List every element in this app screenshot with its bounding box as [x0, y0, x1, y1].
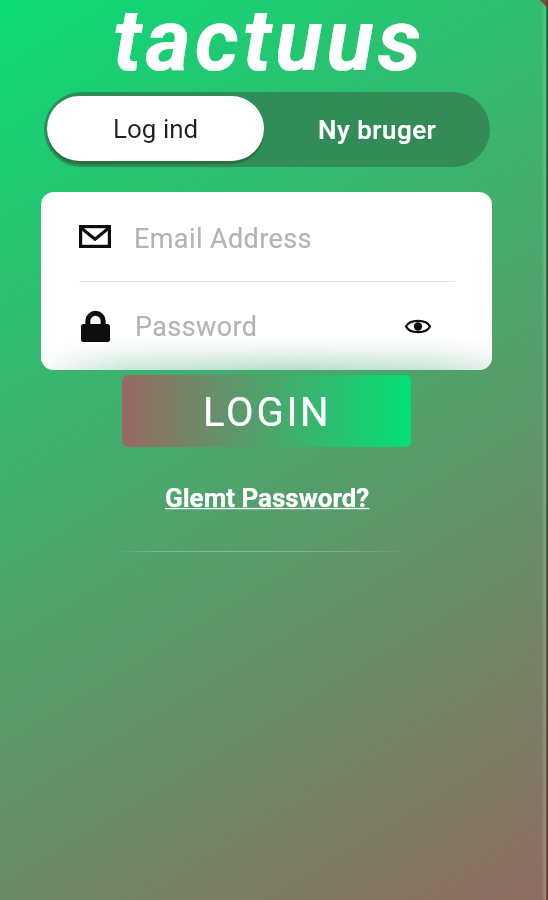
staticText: LOGIN — [203, 389, 332, 436]
button[interactable]: Log ind — [47, 96, 264, 161]
button[interactable]: Email Address — [41, 192, 492, 281]
staticText: Ny bruger — [318, 115, 437, 145]
button[interactable]: Password — [41, 282, 492, 370]
button[interactable]: Glemt Password? — [165, 483, 370, 513]
staticText: tactuus — [113, 0, 426, 91]
staticText: Glemt Password? — [165, 483, 370, 513]
button[interactable]: Show password — [393, 301, 443, 351]
staticText: Email Address — [134, 223, 312, 255]
button[interactable]: Ny bruger — [264, 92, 490, 167]
staticText: Log ind — [113, 114, 199, 144]
button[interactable]: LOGIN — [122, 375, 411, 447]
staticText: Password — [135, 311, 258, 343]
